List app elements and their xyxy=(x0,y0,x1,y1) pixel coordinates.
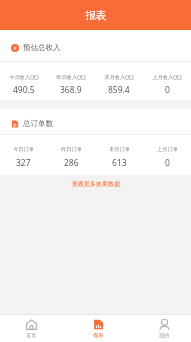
staticText: 327 xyxy=(16,157,31,169)
staticText: 0 xyxy=(165,157,170,169)
staticText: 报表 xyxy=(93,332,104,339)
staticText: 286 xyxy=(64,157,79,169)
staticText: 0 xyxy=(165,84,170,96)
button[interactable]: 查看更多效果数据 xyxy=(0,175,191,194)
staticText: 昨日订单 xyxy=(61,146,82,153)
staticText: 我的 xyxy=(159,332,170,339)
staticText: 查看更多效果数据 xyxy=(72,180,120,188)
staticText: 昨日收入(元) xyxy=(56,73,86,80)
staticText: 本月订单 xyxy=(109,146,130,153)
button[interactable]: Profile xyxy=(127,315,191,342)
staticText: 首页 xyxy=(26,332,37,339)
staticText: 今日收入(元) xyxy=(9,73,39,80)
staticText: 预估总收入 xyxy=(23,43,61,52)
staticText: 368.9 xyxy=(60,84,82,96)
button[interactable]: Home xyxy=(0,315,63,342)
staticText: 上月订单 xyxy=(157,146,178,153)
staticText: 今日订单 xyxy=(13,146,34,153)
staticText: 上月收入(元) xyxy=(152,73,182,80)
staticText: 613 xyxy=(112,157,127,169)
staticText: 本月收入(元) xyxy=(104,73,134,80)
staticText: 总订单数 xyxy=(23,119,53,128)
staticText: 报表 xyxy=(85,9,106,22)
staticText: 859.4 xyxy=(108,84,130,96)
button[interactable]: Reports xyxy=(63,315,127,342)
staticText: 490.5 xyxy=(13,84,35,96)
